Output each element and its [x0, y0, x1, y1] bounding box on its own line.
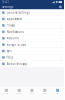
button[interactable]: Me — [51, 86, 64, 97]
staticText: Privacy — [7, 24, 15, 27]
button[interactable]: Notifications — [0, 29, 64, 35]
button[interactable]: About this app — [0, 61, 64, 67]
staticText: Me — [57, 92, 59, 94]
staticText: Sync — [7, 49, 12, 53]
staticText: Appearance — [7, 17, 23, 21]
staticText: Help — [7, 56, 14, 59]
staticText: General Settings — [7, 11, 30, 14]
staticText: Settings — [2, 5, 13, 9]
staticText: About this app — [7, 62, 28, 66]
staticText: Accounts — [7, 36, 19, 40]
staticText: Home — [4, 92, 8, 94]
button[interactable]: Accounts — [0, 35, 64, 42]
button[interactable]: Privacy — [0, 22, 64, 29]
staticText: Storage & Data — [7, 43, 26, 46]
button[interactable]: Inbox — [38, 86, 51, 97]
button[interactable]: Storage & Data — [0, 42, 64, 48]
button[interactable]: Sync — [0, 48, 64, 54]
button[interactable]: Browse — [13, 86, 26, 97]
button[interactable]: Home — [0, 86, 13, 97]
button[interactable]: Account — [59, 5, 62, 8]
button[interactable]: Create — [26, 86, 38, 97]
staticText: Inbox — [43, 92, 47, 94]
staticText: Notifications — [7, 30, 24, 34]
button[interactable]: Help — [0, 54, 64, 61]
staticText: 9:41 — [2, 0, 9, 4]
button[interactable]: Appearance — [0, 16, 64, 22]
staticText: Create — [29, 92, 34, 94]
staticText: Browse — [16, 92, 22, 94]
button[interactable]: General Settings — [0, 10, 64, 16]
